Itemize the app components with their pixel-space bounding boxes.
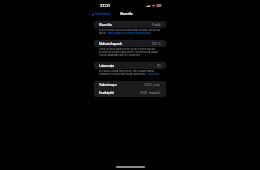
staticText: Akun tila <box>120 12 133 16</box>
staticText: Maksimikapasit. <box>99 42 123 46</box>
button[interactable]: Back <box>92 11 111 17</box>
staticText: Päällä <box>152 23 161 27</box>
staticText: 21:01 <box>100 3 110 8</box>
staticText: Latausraja <box>99 64 115 68</box>
staticText: Asetukset <box>95 12 111 16</box>
staticText: 85 <box>157 64 161 68</box>
button[interactable]: Akun tila <box>94 21 166 28</box>
staticText: Kun akkusi alkaa vanhentua, sitä voidaan… <box>99 70 161 76</box>
staticText: Akun tila <box>99 23 112 27</box>
button[interactable]: Latausraja <box>94 62 166 69</box>
staticText: 100 % <box>152 42 161 46</box>
button[interactable]: Valmistuspv <box>94 81 166 89</box>
staticText: Tämä on akun kapasiteetin suhde uuteen a… <box>99 48 161 57</box>
staticText: iPhonen akun kestoa ja käyttöikää voidaa… <box>99 29 161 35</box>
button[interactable]: Maksimikapasit. <box>94 40 166 47</box>
staticText: Valmistuspv <box>99 83 117 87</box>
staticText: 2024. maalisk. <box>140 91 161 95</box>
staticText: 2023. joulu <box>144 83 161 87</box>
other: Back <box>92 13 94 16</box>
staticText: Ensikäyttö <box>99 91 115 95</box>
button[interactable]: Ensikäyttö <box>94 89 166 97</box>
